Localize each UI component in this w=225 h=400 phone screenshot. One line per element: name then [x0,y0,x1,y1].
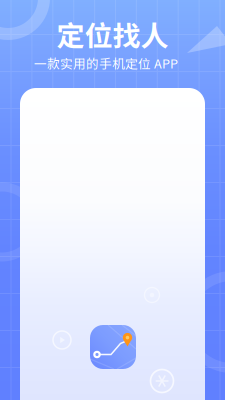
staticText: 定位找人 [56,14,168,54]
staticText: 一款实用的手机定位 APP [34,54,178,72]
